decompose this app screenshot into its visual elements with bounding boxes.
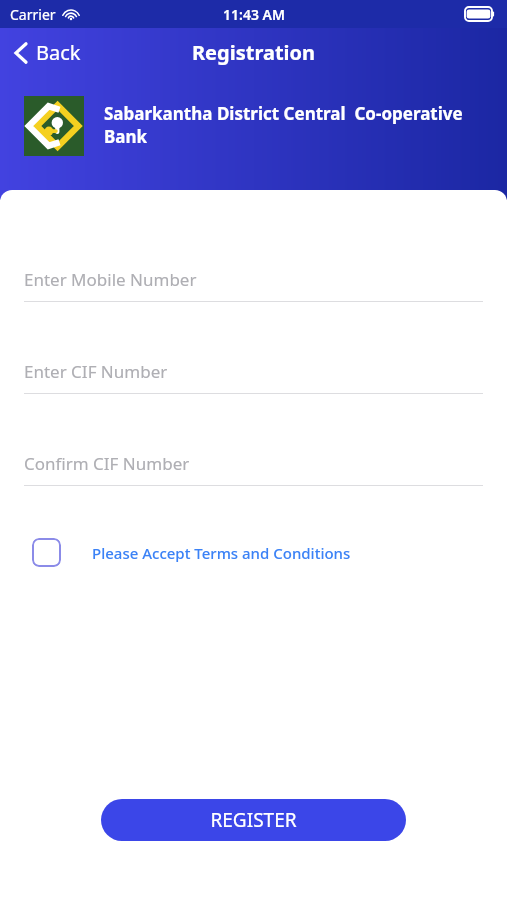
staticText: Carrier [10, 5, 56, 24]
button[interactable]: Back [8, 35, 87, 70]
staticText: Confirm CIF Number [24, 452, 190, 475]
staticText: 11:43 AM [223, 5, 285, 24]
staticText: Sabarkantha District Central Co-operativ… [104, 102, 489, 148]
button[interactable]: REGISTER [101, 799, 406, 841]
staticText: Enter CIF Number [24, 360, 168, 383]
button[interactable]: Confirm CIF Number [24, 452, 483, 486]
staticText: Registration [192, 39, 316, 66]
staticText: Enter Mobile Number [24, 268, 197, 291]
staticText: Please Accept Terms and Conditions [92, 543, 351, 563]
staticText: REGISTER [210, 807, 297, 833]
button[interactable]: Enter CIF Number [24, 360, 483, 394]
button[interactable]: Please Accept Terms and Conditions [32, 532, 363, 573]
staticText: Back [36, 39, 81, 66]
button[interactable]: Enter Mobile Number [24, 268, 483, 302]
